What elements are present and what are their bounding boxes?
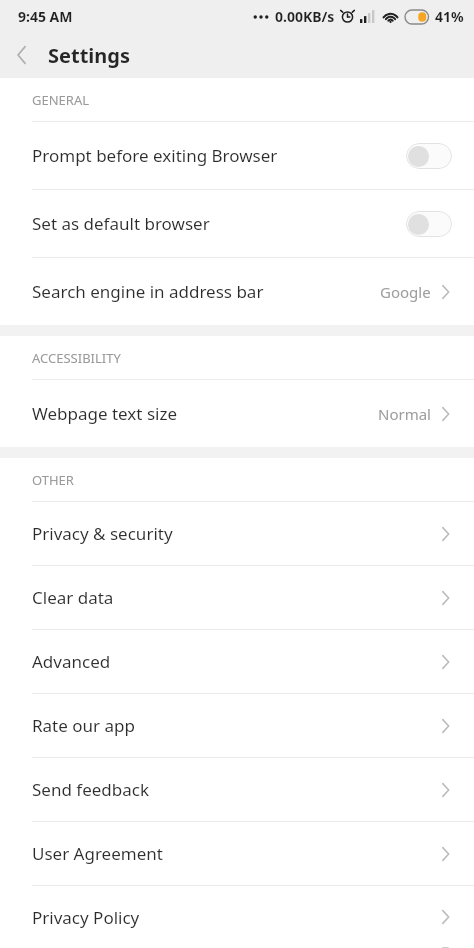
staticText: Privacy & security [32, 522, 441, 545]
button[interactable]: Back [0, 33, 44, 77]
button[interactable]: User Agreement [0, 822, 474, 885]
staticText: Rate our app [32, 714, 441, 737]
staticText: OTHER [32, 471, 74, 489]
button[interactable]: Prompt before exiting Browser [0, 122, 474, 189]
button[interactable]: Privacy & security [0, 502, 474, 565]
staticText: 9:45 AM [18, 7, 73, 26]
button[interactable]: Set as default browser [0, 190, 474, 257]
staticText: Google [380, 282, 431, 302]
staticText: ACCESSIBILITY [32, 349, 121, 367]
staticText: Webpage text size [32, 402, 378, 425]
button[interactable]: Send feedback [0, 758, 474, 821]
staticText: Normal [378, 404, 431, 424]
staticText: Clear data [32, 586, 441, 609]
staticText: Send feedback [32, 778, 441, 801]
button[interactable]: Search engine in address bar [0, 258, 474, 325]
button[interactable]: Rate our app [0, 694, 474, 757]
staticText: GENERAL [32, 91, 90, 109]
button[interactable]: Webpage text size [0, 380, 474, 447]
staticText: Privacy Policy [32, 906, 441, 929]
staticText: Prompt before exiting Browser [32, 144, 406, 167]
button[interactable]: Advanced [0, 630, 474, 693]
button[interactable]: Clear data [0, 566, 474, 629]
button[interactable]: Privacy Policy [0, 886, 474, 948]
staticText: Advanced [32, 650, 441, 673]
staticText: 41% [435, 7, 464, 26]
staticText: Set as default browser [32, 212, 406, 235]
staticText: 0.00KB/s [275, 7, 335, 26]
staticText: Settings [48, 42, 130, 69]
staticText: Search engine in address bar [32, 280, 380, 303]
staticText: User Agreement [32, 842, 441, 865]
